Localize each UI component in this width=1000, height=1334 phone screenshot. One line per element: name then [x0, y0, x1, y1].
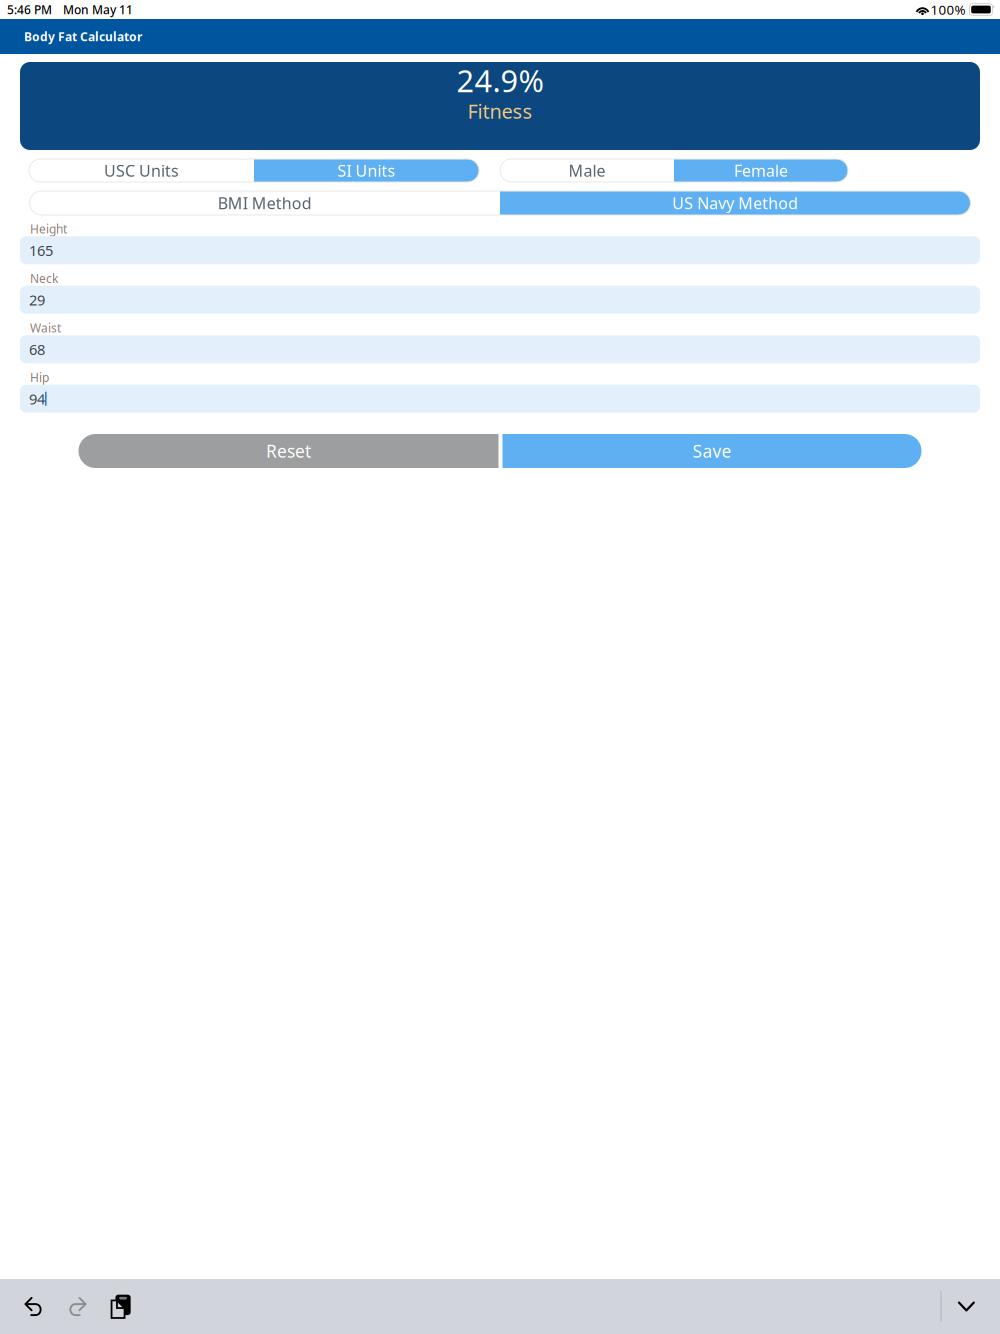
button[interactable]: 165 [20, 236, 980, 264]
staticText: 24.9% [456, 60, 543, 101]
button[interactable]: Hide keyboard [958, 1301, 975, 1312]
button[interactable]: USC Units [29, 159, 254, 182]
staticText: 5:46 PM [7, 1, 52, 17]
staticText: Height [30, 221, 67, 237]
button[interactable]: 94 [20, 385, 980, 413]
staticText: SI Units [337, 160, 395, 181]
staticText: Male [568, 160, 605, 181]
button[interactable]: Save [502, 434, 921, 468]
button[interactable]: 68 [20, 335, 980, 363]
staticText: BMI Method [218, 192, 312, 214]
staticText: Hip [30, 369, 49, 385]
staticText: Waist [30, 320, 61, 336]
staticText: Save [692, 439, 731, 462]
staticText: 68 [29, 339, 45, 359]
button[interactable]: SI Units [254, 159, 479, 182]
staticText: 100% [930, 1, 965, 18]
button[interactable]: Redo [68, 1296, 87, 1316]
staticText: Mon May 11 [63, 1, 133, 17]
button[interactable]: BMI Method [29, 191, 500, 215]
staticText: Body Fat Calculator [24, 28, 142, 44]
button[interactable]: Reset [78, 434, 498, 468]
button[interactable]: Female [674, 159, 848, 182]
button[interactable]: Male [500, 159, 674, 182]
staticText: Fitness [467, 98, 532, 124]
button[interactable]: US Navy Method [500, 191, 970, 215]
staticText: Neck [30, 270, 58, 286]
button[interactable]: Undo [24, 1296, 43, 1316]
button[interactable]: Paste [110, 1293, 131, 1319]
staticText: Female [734, 160, 788, 181]
staticText: USC Units [104, 160, 179, 181]
staticText: US Navy Method [672, 192, 798, 214]
button[interactable]: 29 [20, 286, 980, 314]
staticText: Reset [266, 439, 311, 462]
staticText: 94 [29, 389, 45, 408]
staticText: 165 [29, 240, 53, 260]
staticText: 29 [29, 290, 45, 309]
